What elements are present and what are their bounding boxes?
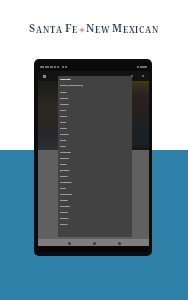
staticText: Japanese — [60, 169, 70, 172]
staticText: Greek — [60, 139, 67, 142]
staticText: Hungarian — [60, 151, 71, 154]
staticText: Portuguese — [60, 193, 72, 196]
staticText: Spanish — [60, 211, 69, 214]
staticText: E — [123, 24, 129, 35]
button[interactable]: More options — [140, 73, 146, 79]
button[interactable]: Swedish — [58, 215, 132, 221]
button[interactable]: Portuguese — [58, 191, 132, 197]
staticText: Swedish — [60, 217, 69, 220]
button[interactable]: French — [58, 125, 132, 131]
button[interactable]: Danish — [58, 113, 132, 119]
staticText: I — [135, 24, 139, 35]
staticText: N — [86, 21, 95, 35]
staticText: M — [112, 21, 123, 35]
button[interactable]: Russian — [58, 197, 132, 203]
staticText: E — [72, 24, 78, 35]
button[interactable]: Greek — [58, 137, 132, 143]
staticText: X — [129, 24, 135, 35]
staticText: Translate — [60, 78, 71, 81]
staticText: S — [29, 21, 36, 35]
staticText: Chinese — [60, 97, 69, 100]
staticText: Turkish — [60, 223, 68, 226]
button[interactable]: Navigate up — [41, 73, 47, 79]
staticText: A — [36, 24, 43, 35]
button[interactable]: German — [58, 131, 132, 137]
staticText: Hindi — [60, 145, 66, 148]
staticText: Dutch — [60, 121, 67, 124]
staticText: English (New Zealand) — [60, 84, 83, 87]
button[interactable]: English (New Zealand) — [58, 82, 132, 88]
button[interactable]: Korean — [58, 173, 132, 179]
button[interactable]: Turkish — [58, 221, 132, 227]
button[interactable]: Spanish — [58, 209, 132, 215]
staticText: N — [43, 24, 50, 35]
button[interactable]: Dutch — [58, 119, 132, 125]
staticText: W — [101, 24, 110, 35]
staticText: Slovenian — [60, 205, 70, 208]
button[interactable]: Italian — [58, 161, 132, 167]
staticText: F — [65, 21, 72, 35]
staticText: C — [139, 24, 145, 35]
staticText: Arabic — [60, 91, 67, 94]
button[interactable]: Search — [129, 73, 135, 79]
staticText: E — [95, 24, 101, 35]
staticText: N — [152, 24, 159, 35]
staticText: Russian — [60, 199, 68, 202]
staticText: Norwegian — [60, 181, 72, 184]
button[interactable]: Icelandic — [58, 155, 132, 161]
staticText: Croatian — [60, 103, 69, 106]
staticText: Italian — [60, 163, 67, 166]
button[interactable]: Norwegian — [58, 179, 132, 185]
button[interactable]: Chinese — [58, 95, 132, 101]
button[interactable]: Hungarian — [58, 149, 132, 155]
button[interactable]: Recent apps — [116, 240, 122, 246]
staticText: German — [60, 133, 69, 136]
staticText: A — [145, 24, 152, 35]
staticText: Polish — [60, 187, 67, 190]
button[interactable]: Back — [66, 240, 72, 246]
button[interactable]: Home — [91, 240, 97, 246]
staticText: Czech — [60, 109, 67, 112]
button[interactable]: Japanese — [58, 167, 132, 173]
button[interactable]: Czech — [58, 107, 132, 113]
staticText: T — [50, 24, 56, 35]
staticText: Icelandic — [60, 157, 70, 160]
button[interactable]: Polish — [58, 185, 132, 191]
button[interactable]: Croatian — [58, 101, 132, 107]
button[interactable]: Arabic — [58, 89, 132, 95]
button[interactable]: Hindi — [58, 143, 132, 149]
button[interactable]: Slovenian — [58, 203, 132, 209]
staticText: French — [60, 127, 67, 130]
staticText: Korean — [60, 175, 68, 178]
staticText: Danish — [60, 115, 68, 118]
staticText: A — [56, 24, 63, 35]
